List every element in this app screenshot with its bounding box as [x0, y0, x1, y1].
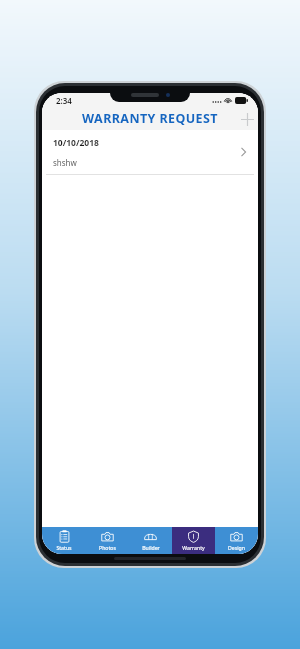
button[interactable]: Builder — [129, 527, 172, 554]
button[interactable]: Status — [42, 527, 86, 554]
staticText: Warranty — [182, 544, 205, 551]
staticText: Builder — [142, 544, 160, 551]
staticText: 10/10/2018 — [53, 137, 99, 149]
button[interactable]: Warranty — [172, 527, 215, 554]
button[interactable]: Add warranty request — [236, 108, 258, 130]
staticText: Photos — [99, 544, 116, 551]
staticText: WARRANTY REQUEST — [82, 110, 218, 127]
button[interactable]: 10/10/2018 — [42, 130, 258, 174]
staticText: Design — [228, 544, 245, 551]
staticText: 2:34 — [56, 95, 72, 106]
staticText: Status — [56, 544, 72, 551]
staticText: shshw — [53, 157, 77, 168]
button[interactable]: Design — [215, 527, 258, 554]
button[interactable]: Photos — [86, 527, 129, 554]
